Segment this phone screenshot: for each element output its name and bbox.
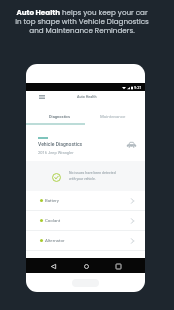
staticText: Vehicle Diagnostics [38, 141, 83, 147]
button[interactable]: Diagnostics [26, 106, 85, 125]
staticText: Alternator [45, 238, 65, 243]
button[interactable]: Open navigation menu [36, 91, 48, 103]
button[interactable]: Vehicle details [126, 139, 137, 150]
staticText: Auto Health helps you keep your car in t… [13, 7, 151, 35]
button[interactable]: Home [80, 260, 92, 272]
button[interactable]: Back [47, 260, 59, 272]
button[interactable]: Battery [26, 191, 145, 210]
staticText: 2016 Jeep Wrangler [38, 150, 74, 155]
staticText: Auto Health [77, 95, 97, 99]
button[interactable]: Recent apps [112, 260, 124, 272]
staticText: Diagnostics [49, 114, 71, 119]
staticText: Maintenance [100, 114, 126, 119]
button[interactable]: Coolant [26, 211, 145, 230]
button[interactable]: Maintenance [85, 106, 145, 125]
staticText: No issues have been detected with your v… [69, 171, 116, 181]
staticText: Battery [45, 198, 59, 203]
staticText: 9:21 [134, 85, 142, 90]
staticText: Coolant [45, 218, 61, 223]
button[interactable]: Alternator [26, 231, 145, 250]
